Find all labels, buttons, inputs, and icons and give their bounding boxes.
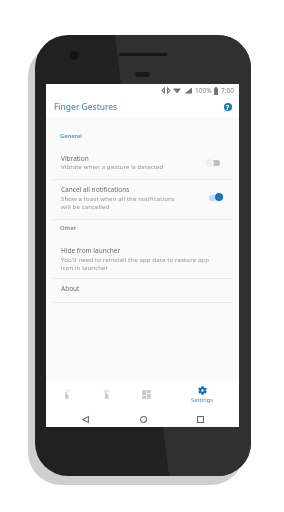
staticText: Other xyxy=(60,224,77,232)
staticText: Settings xyxy=(191,396,214,404)
staticText: Vibrate when a gesture is detected xyxy=(61,162,164,170)
staticText: Vibration xyxy=(61,154,89,163)
button[interactable] xyxy=(46,180,239,218)
button[interactable] xyxy=(46,279,239,302)
button[interactable]: Home xyxy=(128,404,158,434)
staticText: will be cancelled xyxy=(61,202,110,210)
staticText: About xyxy=(61,284,80,293)
button[interactable]: Apps xyxy=(126,381,166,403)
button[interactable] xyxy=(46,238,239,278)
button[interactable]: Back xyxy=(70,404,100,434)
button[interactable]: Recents xyxy=(185,404,215,434)
staticText: Cancel all notifications xyxy=(61,185,130,194)
button[interactable]: Actions xyxy=(86,381,126,403)
staticText: General xyxy=(60,132,82,140)
staticText: icon in launcher xyxy=(61,263,109,271)
staticText: Show a toast when all the notifications xyxy=(61,194,175,202)
button[interactable]: Settings xyxy=(166,381,239,403)
staticText: Finger Gestures xyxy=(54,101,118,113)
button[interactable]: Gestures xyxy=(46,381,86,403)
staticText: 7:00 xyxy=(221,86,234,95)
staticText: You'll need to reinstall the app data to… xyxy=(61,255,210,263)
button[interactable] xyxy=(46,146,239,179)
staticText: 100% xyxy=(195,86,212,95)
staticText: ? xyxy=(226,103,230,112)
button[interactable]: Help xyxy=(220,99,236,115)
staticText: Hide from launcher xyxy=(61,246,121,255)
